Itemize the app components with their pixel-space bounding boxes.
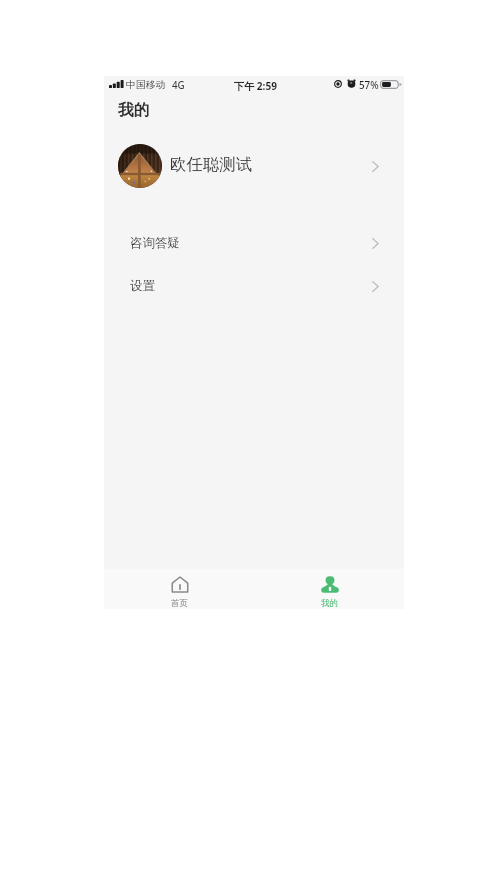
staticText: 咨询答疑 [130, 235, 180, 251]
button[interactable]: 咨询答疑 [104, 222, 404, 264]
staticText: 4G [172, 79, 185, 92]
button[interactable]: Profile photo [104, 132, 404, 200]
button[interactable]: 我的 [308, 573, 352, 607]
staticText: 57% [359, 79, 379, 92]
staticText: 首页 [171, 598, 189, 609]
other: Open [372, 238, 379, 249]
button[interactable]: 我的 [118, 100, 150, 120]
staticText: 设置 [130, 278, 155, 294]
staticText: 中国移动 [126, 79, 166, 91]
other: Profile photo [118, 144, 162, 188]
staticText: 我的 [321, 598, 339, 609]
staticText: 我的 [118, 100, 150, 120]
staticText: 下午 2:59 [234, 79, 277, 93]
button[interactable]: 设置 [104, 265, 404, 307]
other: Open [372, 161, 379, 172]
staticText: 欧任聪测试 [170, 154, 252, 175]
button[interactable]: 首页 [158, 573, 202, 607]
other: Open [372, 281, 379, 292]
